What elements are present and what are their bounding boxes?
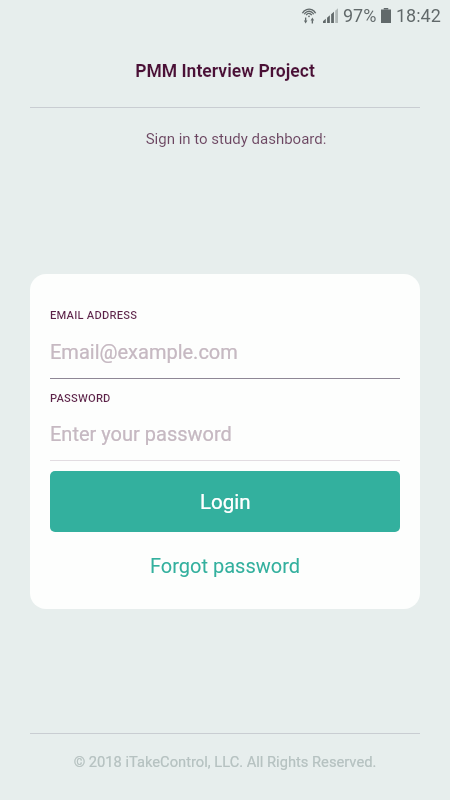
other: Battery 97 percent bbox=[381, 8, 391, 23]
button[interactable]: Login bbox=[50, 471, 400, 532]
button[interactable]: Forgot password bbox=[50, 532, 400, 599]
staticText: PMM Interview Project bbox=[0, 61, 450, 82]
staticText: 97% bbox=[343, 5, 377, 26]
staticText: EMAIL ADDRESS bbox=[50, 309, 138, 322]
staticText: PASSWORD bbox=[50, 392, 111, 405]
staticText: Sign in to study dashboard: bbox=[11, 130, 450, 148]
other: Wi-Fi connected bbox=[301, 7, 317, 24]
staticText: Enter your password bbox=[50, 422, 232, 445]
staticText: Login bbox=[200, 490, 251, 514]
staticText: © 2018 iTakeControl, LLC. All Rights Res… bbox=[0, 753, 450, 770]
staticText: 18:42 bbox=[396, 5, 441, 26]
other: Mobile signal strength bbox=[323, 8, 338, 23]
button[interactable]: EMAIL ADDRESS bbox=[50, 309, 400, 379]
staticText: Forgot password bbox=[150, 554, 301, 577]
button[interactable]: PASSWORD bbox=[50, 392, 400, 461]
staticText: Email@example.com bbox=[50, 340, 238, 363]
